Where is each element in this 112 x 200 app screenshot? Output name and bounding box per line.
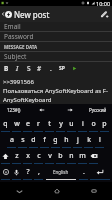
button[interactable]: e xyxy=(22,116,33,132)
staticText: t xyxy=(48,119,51,129)
button[interactable]: SP xyxy=(56,62,67,74)
button[interactable]: Shift xyxy=(0,148,11,164)
button[interactable]: f xyxy=(39,132,50,148)
staticText: m xyxy=(79,151,86,161)
staticText: s xyxy=(21,135,25,145)
button[interactable]: . xyxy=(45,62,56,74)
button[interactable]: s xyxy=(17,132,28,148)
button[interactable]: b xyxy=(55,148,66,164)
button[interactable]: l xyxy=(94,132,105,148)
staticText: Password xyxy=(4,32,34,41)
staticText: # xyxy=(37,64,42,73)
staticText: v xyxy=(48,151,52,161)
staticText: Email xyxy=(4,22,21,31)
staticText: d xyxy=(31,135,36,145)
button[interactable]: p xyxy=(99,116,110,132)
staticText: >>3991566 xyxy=(3,78,34,86)
staticText: AnySoftKeyboard xyxy=(3,96,52,104)
button[interactable]: w xyxy=(11,116,22,132)
button[interactable]: 123#() xyxy=(0,104,28,116)
staticText: . xyxy=(83,167,85,177)
button[interactable]: x xyxy=(22,148,33,164)
staticText: c xyxy=(37,151,41,161)
staticText: q xyxy=(3,119,8,129)
staticText: SP xyxy=(59,65,65,72)
button[interactable]: Recent apps xyxy=(75,182,112,200)
staticText: z xyxy=(15,151,19,161)
staticText: 123#() xyxy=(7,107,21,113)
button[interactable]: v xyxy=(44,148,55,164)
button[interactable]: Email xyxy=(0,22,112,32)
button[interactable]: Space xyxy=(44,164,78,180)
staticText: o xyxy=(91,119,96,129)
button[interactable]: Home xyxy=(38,182,75,200)
button[interactable]: d xyxy=(28,132,39,148)
button[interactable]: j xyxy=(72,132,83,148)
button[interactable]: Русский xyxy=(84,104,112,116)
staticText: h xyxy=(64,135,69,145)
button[interactable]: y xyxy=(55,116,66,132)
staticText: g xyxy=(53,135,58,145)
button[interactable]: I xyxy=(12,62,23,74)
staticText: . xyxy=(50,64,52,73)
button[interactable]: # xyxy=(34,62,45,74)
button[interactable]: Enter xyxy=(89,164,111,180)
staticText: English xyxy=(53,169,69,175)
button[interactable]: Password xyxy=(0,32,112,42)
button[interactable]: . xyxy=(78,164,89,180)
staticText: I xyxy=(16,64,19,73)
staticText: w xyxy=(14,119,20,129)
button[interactable]: h xyxy=(61,132,72,148)
staticText: New post xyxy=(14,9,50,20)
button[interactable]: Preview xyxy=(67,62,81,74)
button[interactable]: Back xyxy=(0,6,5,22)
staticText: e xyxy=(26,119,30,129)
staticText: l xyxy=(99,135,101,145)
staticText: x xyxy=(26,151,30,161)
button[interactable]: Backspace xyxy=(88,148,99,164)
button[interactable]: Voice input xyxy=(11,164,22,180)
staticText: MESSAGE DATA xyxy=(4,44,38,50)
staticText: Subject xyxy=(4,52,27,61)
staticText: Пользоваться AnySoftKeyboard as F- xyxy=(3,87,108,95)
staticText: j xyxy=(77,135,79,145)
button[interactable]: n xyxy=(66,148,77,164)
button[interactable]: Attach file xyxy=(96,6,112,22)
staticText: f xyxy=(43,135,46,145)
button[interactable]: g xyxy=(50,132,61,148)
staticText: n xyxy=(69,151,74,161)
button[interactable]: S xyxy=(23,62,34,74)
staticText: S xyxy=(27,64,31,73)
staticText: ? xyxy=(26,167,30,177)
staticText: i xyxy=(82,119,84,129)
staticText: a xyxy=(10,135,14,145)
staticText: r xyxy=(37,119,40,129)
staticText: B xyxy=(4,64,9,73)
staticText: Русский xyxy=(89,107,107,113)
staticText: k xyxy=(87,135,91,145)
staticText: y xyxy=(59,119,63,129)
staticText: b xyxy=(58,151,63,161)
button[interactable]: Move cursor left xyxy=(28,104,56,116)
button[interactable]: i xyxy=(77,116,88,132)
button[interactable]: o xyxy=(88,116,99,132)
button[interactable]: t xyxy=(44,116,55,132)
button[interactable]: Move cursor right xyxy=(56,104,84,116)
button[interactable]: k xyxy=(83,132,94,148)
button[interactable]: a xyxy=(6,132,17,148)
button[interactable]: Hide keyboard xyxy=(0,182,38,200)
button[interactable]: Subject xyxy=(0,52,112,62)
button[interactable]: , xyxy=(33,164,44,180)
staticText: , xyxy=(38,167,40,177)
button[interactable]: r xyxy=(33,116,44,132)
button[interactable]: B xyxy=(1,62,12,74)
staticText: p xyxy=(102,119,107,129)
button[interactable]: Emoji xyxy=(0,164,11,180)
button[interactable]: q xyxy=(0,116,11,132)
staticText: 10:00 xyxy=(96,0,111,6)
button[interactable]: u xyxy=(66,116,77,132)
button[interactable]: m xyxy=(77,148,88,164)
button[interactable]: ? xyxy=(22,164,33,180)
button[interactable]: z xyxy=(11,148,22,164)
button[interactable]: c xyxy=(33,148,44,164)
